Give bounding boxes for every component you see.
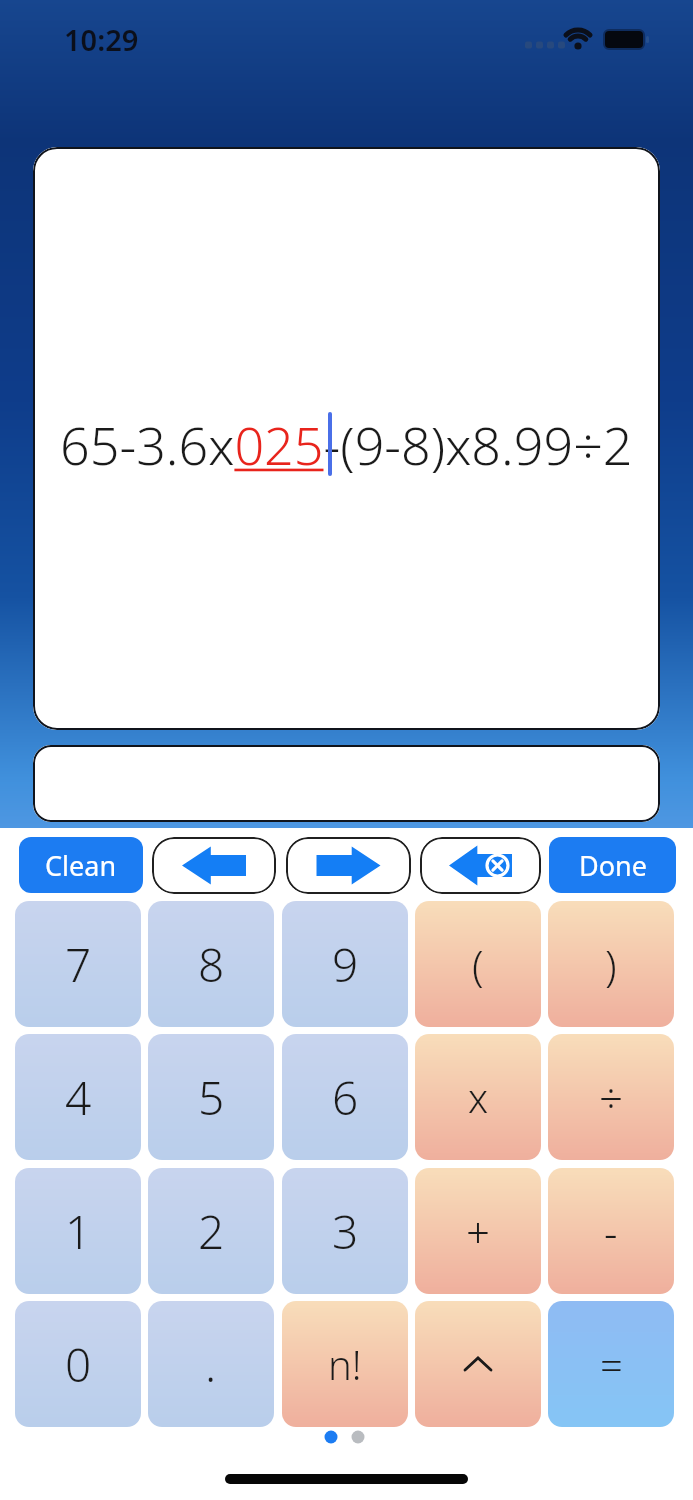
button[interactable]: 4 — [15, 1034, 141, 1160]
button[interactable] — [420, 837, 541, 894]
button[interactable]: 6 — [282, 1034, 408, 1160]
button[interactable]: 2 — [148, 1168, 274, 1294]
button[interactable]: + — [415, 1168, 541, 1294]
staticText: 6 — [332, 1066, 359, 1129]
staticText: = — [600, 1337, 623, 1391]
button[interactable]: 5 — [148, 1034, 274, 1160]
button[interactable]: - — [548, 1168, 674, 1294]
staticText: Done — [579, 847, 647, 884]
staticText: Clean — [45, 847, 117, 884]
staticText: - — [604, 1203, 618, 1260]
button[interactable] — [286, 837, 411, 894]
staticText: 0 — [65, 1333, 92, 1396]
button[interactable]: 8 — [148, 901, 274, 1027]
staticText: 7 — [65, 933, 92, 996]
staticText: 5 — [198, 1066, 225, 1129]
staticText: 4 — [65, 1066, 92, 1129]
button[interactable]: x — [415, 1034, 541, 1160]
button[interactable]: 0 — [15, 1301, 141, 1427]
staticText: x — [468, 1070, 489, 1124]
button[interactable]: 7 — [15, 901, 141, 1027]
button[interactable]: = — [548, 1301, 674, 1427]
button[interactable] — [415, 1301, 541, 1427]
staticText: 10:29 — [64, 20, 139, 59]
staticText: 3 — [332, 1200, 359, 1263]
button[interactable]: 1 — [15, 1168, 141, 1294]
staticText: 65-3.6x025-(9-8)x8.99÷2 — [60, 409, 633, 480]
button[interactable]: . — [148, 1301, 274, 1427]
staticText: 8 — [198, 933, 225, 996]
button[interactable]: ( — [415, 901, 541, 1027]
staticText: 1 — [65, 1200, 92, 1263]
staticText: ) — [605, 936, 617, 993]
button[interactable]: ÷ — [548, 1034, 674, 1160]
staticText: ( — [472, 936, 484, 993]
button[interactable]: 3 — [282, 1168, 408, 1294]
staticText: ÷ — [599, 1069, 623, 1126]
staticText: 9 — [332, 933, 359, 996]
button[interactable]: 9 — [282, 901, 408, 1027]
staticText: n! — [328, 1337, 362, 1391]
button[interactable]: ) — [548, 901, 674, 1027]
button[interactable] — [152, 837, 276, 894]
button[interactable]: Clean — [19, 837, 143, 893]
staticText: 2 — [198, 1200, 225, 1263]
button[interactable]: n! — [282, 1301, 408, 1427]
button[interactable]: Done — [549, 837, 676, 893]
staticText: . — [205, 1333, 217, 1396]
staticText: + — [466, 1203, 490, 1260]
